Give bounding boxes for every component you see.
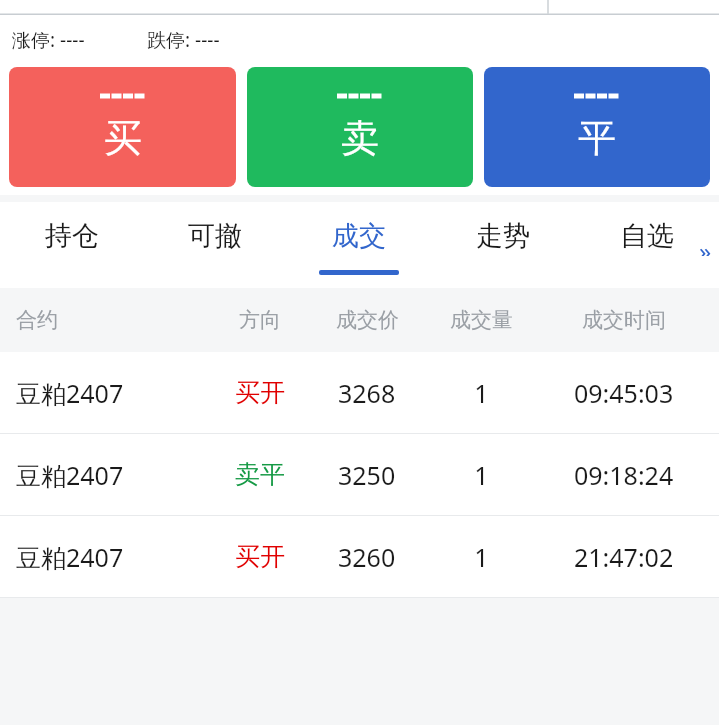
button[interactable]: 成交 (287, 202, 431, 288)
staticText: » (699, 234, 712, 256)
staticText: 买 (104, 114, 142, 162)
staticText: 3260 (338, 540, 396, 574)
staticText: 可撤 (188, 219, 242, 253)
staticText: 豆粕2407 (16, 458, 124, 492)
staticText: 平 (578, 114, 616, 162)
staticText: 合约 (16, 307, 58, 333)
staticText: 09:18:24 (574, 458, 674, 492)
button[interactable]: 买 (9, 67, 236, 187)
button[interactable]: 平 (484, 67, 710, 187)
staticText: 涨停: ---- (12, 27, 85, 53)
button[interactable]: 走势 (431, 202, 575, 288)
staticText: 自选 (620, 219, 674, 253)
staticText: 21:47:02 (574, 540, 674, 574)
staticText: 成交 (332, 219, 386, 253)
staticText: 持仓 (45, 219, 99, 253)
button[interactable]: 可撤 (143, 202, 287, 288)
staticText: 卖 (341, 114, 379, 162)
button[interactable]: 豆粕2407 (0, 434, 719, 515)
button[interactable]: 豆粕2407 (0, 516, 719, 597)
staticText: 1 (474, 376, 489, 410)
button[interactable]: 自选 (575, 202, 719, 288)
button[interactable]: More tabs (694, 234, 716, 256)
staticText: 3250 (338, 458, 396, 492)
button[interactable]: 卖 (247, 67, 473, 187)
staticText: 买开 (235, 377, 285, 408)
button[interactable]: 持仓 (0, 202, 143, 288)
staticText: 豆粕2407 (16, 540, 124, 574)
staticText: 1 (474, 458, 489, 492)
staticText: 买开 (235, 541, 285, 572)
staticText: 成交时间 (582, 307, 666, 333)
staticText: 方向 (239, 307, 281, 333)
staticText: 1 (474, 540, 489, 574)
button[interactable]: 豆粕2407 (0, 352, 719, 433)
staticText: 3268 (338, 376, 396, 410)
staticText: 豆粕2407 (16, 376, 124, 410)
staticText: 跌停: ---- (147, 27, 220, 53)
staticText: 走势 (476, 219, 530, 253)
staticText: 成交量 (450, 307, 513, 333)
staticText: 09:45:03 (574, 376, 674, 410)
staticText: 成交价 (336, 307, 399, 333)
staticText: 卖平 (235, 459, 285, 490)
